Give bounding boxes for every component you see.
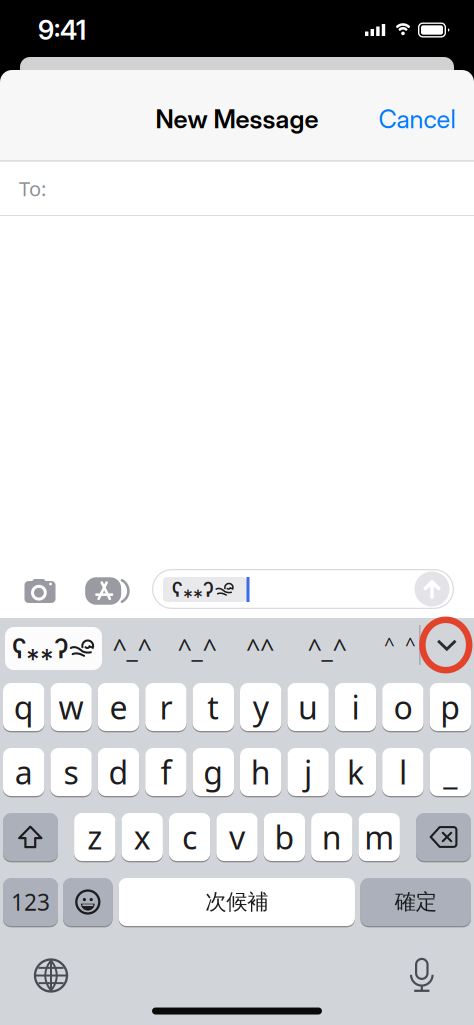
staticText: w [59,686,84,728]
staticText: s [64,751,79,793]
button[interactable]: Numbers [3,878,58,926]
button[interactable]: i [335,683,376,731]
button[interactable]: x [121,813,163,861]
staticText: i [351,686,359,728]
staticText: z [87,816,102,858]
staticText: ʕ⁎⁎ʔ [172,577,214,602]
button[interactable]: Next keyboard [35,959,67,991]
staticText: f [160,751,171,793]
button[interactable]: v [216,813,258,861]
staticText: k [347,751,364,793]
button[interactable]: l [382,748,424,796]
staticText: m [364,816,394,858]
staticText: t [207,686,219,728]
button[interactable]: Dismiss candidates [436,639,457,651]
button[interactable]: u [287,683,329,731]
button[interactable]: Dictation [409,958,435,992]
button[interactable]: p [430,683,471,731]
staticText: ^_^ [112,631,151,665]
staticText: r [159,686,172,728]
button[interactable]: m [358,813,400,861]
button[interactable]: q [3,683,44,731]
staticText: 次候補 [205,889,268,915]
staticText: l [399,751,407,793]
staticText: h [251,751,271,793]
button[interactable]: ^ ^ [384,632,416,656]
button[interactable]: o [382,683,424,731]
staticText: u [298,686,318,728]
button[interactable]: ^_^ [177,631,216,665]
button[interactable]: Send [414,571,449,606]
button[interactable]: a [3,748,44,796]
staticText: b [274,816,294,858]
staticText: c [182,816,197,858]
button[interactable]: 次候補 [119,878,355,926]
staticText: n [322,816,342,858]
button[interactable]: Delete [416,813,471,861]
button[interactable]: y [240,683,281,731]
staticText: j [304,751,312,793]
staticText: q [14,686,34,728]
button[interactable]: r [145,683,187,731]
button[interactable]: Cancel [378,104,455,134]
button[interactable]: g [193,748,234,796]
button[interactable]: t [193,683,234,731]
staticText: d [108,751,128,793]
staticText: y [253,686,269,728]
button[interactable]: f [145,748,187,796]
staticText: 確定 [395,889,437,915]
staticText: v [229,816,245,858]
staticText: p [440,686,460,728]
button[interactable]: w [50,683,92,731]
staticText: 123 [11,887,50,917]
button[interactable]: d [98,748,139,796]
staticText: ^_^ [307,631,346,665]
staticText: ʕ⁎⁎ʔ [12,632,68,665]
staticText: ^^ [246,631,274,665]
button[interactable]: ^_^ [112,631,151,665]
button[interactable]: n [311,813,352,861]
staticText: ^_^ [177,631,216,665]
staticText: a [15,751,33,793]
button[interactable]: k [335,748,376,796]
button[interactable]: To: [0,161,474,215]
staticText: g [203,751,223,793]
staticText: o [393,686,412,728]
button[interactable]: Shift [3,813,58,861]
button[interactable]: c [169,813,210,861]
staticText: x [134,816,151,858]
button[interactable]: 確定 [360,878,471,926]
staticText: New Message [155,104,318,134]
button[interactable]: Camera [24,578,55,604]
button[interactable]: ʕ⁎⁎ʔ [5,627,102,670]
staticText: To: [19,175,46,202]
button[interactable]: s [50,748,92,796]
button[interactable]: _ [430,748,471,796]
button[interactable]: z [74,813,115,861]
button[interactable]: e [98,683,139,731]
staticText: ^ ^ [384,632,416,656]
staticText: e [109,686,127,728]
button[interactable]: ^^ [246,631,274,665]
button[interactable]: iMessage apps [85,577,128,605]
button[interactable]: ^_^ [307,631,346,665]
staticText: Cancel [378,104,455,134]
staticText: _ [443,751,457,793]
button[interactable]: b [264,813,305,861]
button[interactable]: h [240,748,281,796]
button[interactable]: Emoji [63,878,113,926]
button[interactable]: j [287,748,329,796]
staticText: 9:41 [38,14,86,46]
